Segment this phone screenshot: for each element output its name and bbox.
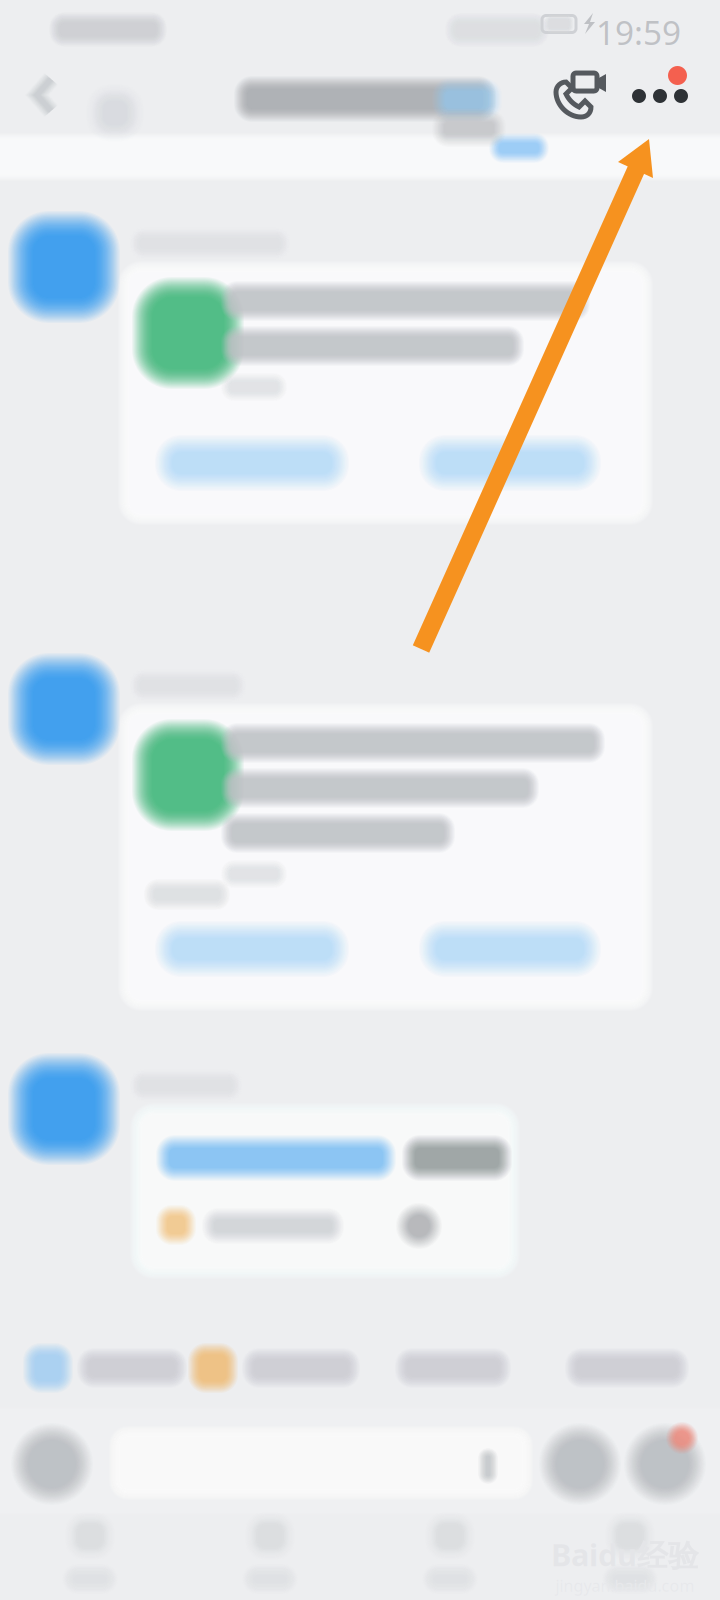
button[interactable]: Tab bbox=[360, 1507, 540, 1599]
button[interactable] bbox=[16, 661, 543, 961]
button[interactable] bbox=[16, 219, 543, 475]
button[interactable]: Tab bbox=[0, 1507, 180, 1599]
button[interactable]: Tab bbox=[180, 1507, 360, 1599]
button[interactable] bbox=[0, 0, 170, 60]
button[interactable] bbox=[0, 0, 160, 60]
button[interactable]: More bbox=[0, 0, 76, 88]
button[interactable] bbox=[0, 0, 130, 60]
button[interactable]: Back bbox=[0, 0, 62, 88]
button[interactable] bbox=[0, 0, 140, 60]
staticText: Baidu经验 bbox=[551, 1534, 699, 1575]
button[interactable]: Emoji bbox=[0, 0, 82, 82]
button[interactable]: Voice and video call bbox=[0, 0, 84, 88]
staticText: jingyan.baidu.com bbox=[555, 1575, 694, 1596]
button[interactable] bbox=[16, 1061, 402, 1226]
button[interactable]: Tab bbox=[540, 1507, 720, 1599]
button[interactable]: Voice input bbox=[0, 0, 82, 82]
staticText: 19:59 bbox=[596, 10, 681, 54]
button[interactable]: More options bbox=[0, 0, 100, 100]
